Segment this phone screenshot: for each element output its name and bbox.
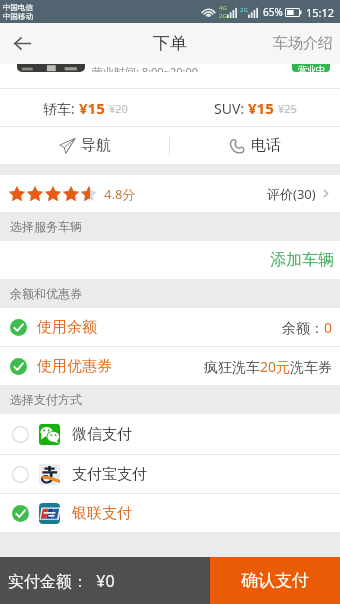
staticText: 营业中 <box>298 64 325 72</box>
staticText: 电话 <box>251 136 281 155</box>
button[interactable]: 车场介绍 <box>265 23 340 64</box>
staticText: 4.8分 <box>104 185 136 203</box>
staticText: 评价(30) <box>267 185 316 203</box>
staticText: SUV: <box>214 99 248 118</box>
button[interactable]: 营业时间: 8:00~20:00 <box>0 64 340 88</box>
staticText: 确认支付 <box>241 570 309 591</box>
staticText: 65% <box>263 5 283 19</box>
staticText: ¥15 <box>248 98 274 118</box>
button[interactable]: Back <box>0 23 44 64</box>
button[interactable]: 添加车辆 <box>0 241 340 279</box>
staticText: 支付宝支付 <box>72 465 147 484</box>
button[interactable]: 使用余额 <box>0 308 340 346</box>
staticText: 选择支付方式 <box>10 392 82 407</box>
staticText: 轿车: <box>43 99 79 118</box>
staticText: ¥15 <box>79 98 105 118</box>
button[interactable]: 银联支付 <box>0 494 340 532</box>
staticText: ¥20 <box>109 101 128 116</box>
staticText: 余额：0 <box>282 318 333 337</box>
staticText: 选择服务车辆 <box>10 219 82 234</box>
staticText: 实付金额： ¥0 <box>8 570 115 592</box>
staticText: 使用余额 <box>37 318 97 337</box>
staticText: 添加车辆 <box>270 250 334 270</box>
button[interactable]: 使用优惠券 <box>0 347 340 385</box>
staticText: 疯狂洗车20元洗车券 <box>204 357 333 376</box>
staticText: 中国移动 <box>3 12 33 21</box>
button[interactable]: 微信支付 <box>0 414 340 454</box>
button[interactable]: 4.8分 <box>0 175 340 212</box>
staticText: 营业时间: 8:00~20:00 <box>92 64 199 72</box>
staticText: 使用优惠券 <box>37 357 112 376</box>
staticText: 2G <box>219 12 227 20</box>
button[interactable]: 支付宝支付 <box>0 455 340 493</box>
button[interactable]: 确认支付 <box>210 557 340 604</box>
staticText: 中国电信 <box>3 3 33 12</box>
staticText: 微信支付 <box>72 425 132 444</box>
button[interactable]: 电话 <box>170 127 340 164</box>
staticText: 导航 <box>81 136 111 155</box>
staticText: 下单 <box>153 33 187 54</box>
staticText: ¥25 <box>278 101 297 116</box>
staticText: 4G <box>219 4 227 12</box>
staticText: 余额和优惠券 <box>10 286 82 301</box>
staticText: 2G <box>240 6 248 14</box>
staticText: 银联支付 <box>72 504 132 523</box>
button[interactable]: 导航 <box>0 127 169 164</box>
staticText: 15:12 <box>306 5 335 20</box>
staticText: 车场介绍 <box>273 34 333 53</box>
